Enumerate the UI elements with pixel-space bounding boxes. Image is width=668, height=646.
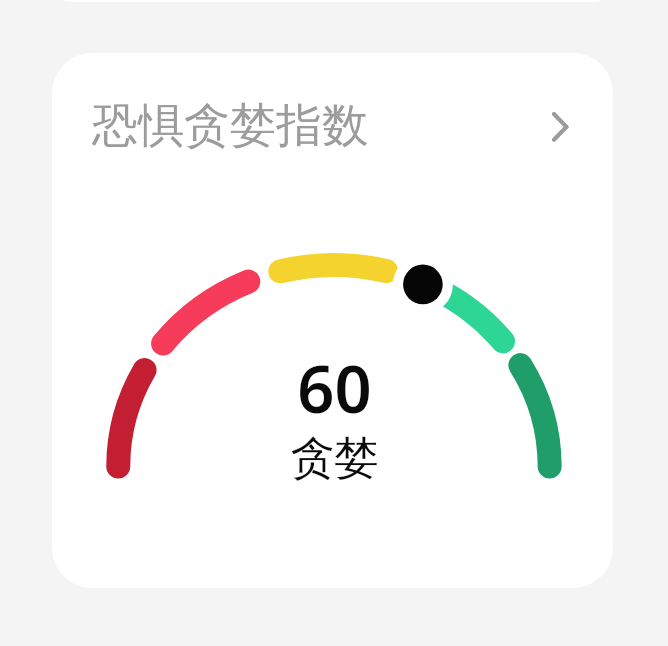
staticText: 贪婪 [54,431,613,491]
staticText: 恐惧贪婪指数 [92,97,368,155]
staticText: 60 [54,344,613,414]
button[interactable]: Open fear and greed index details [530,97,590,157]
button[interactable]: 恐惧贪婪指数 [52,53,613,588]
